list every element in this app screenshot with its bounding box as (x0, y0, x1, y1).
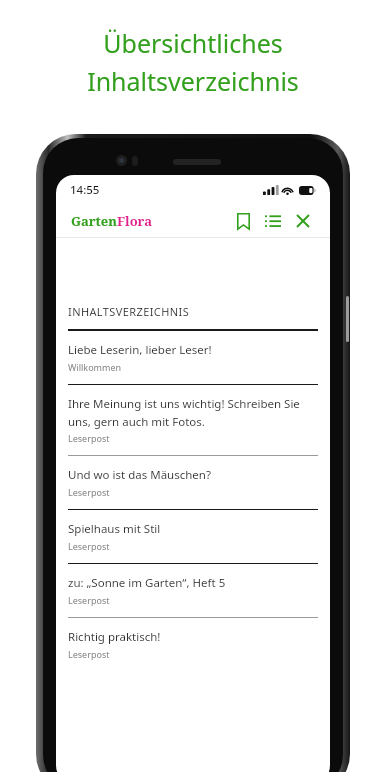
staticText: Ihre Meinung ist uns wichtig! Schreiben … (68, 396, 318, 429)
button[interactable]: Und wo ist das Mäuschen? (68, 456, 318, 509)
button[interactable]: Liebe Leserin, lieber Leser! (68, 331, 318, 384)
button[interactable]: Lesezeichen (228, 206, 258, 236)
staticText: INHALTSVERZEICHNIS (68, 304, 190, 319)
staticText: zu: „Sonne im Garten“, Heft 5 (68, 575, 226, 591)
staticText: Leserpost (68, 486, 110, 498)
button[interactable]: Spielhaus mit Stil (68, 510, 318, 563)
staticText: Leserpost (68, 540, 110, 552)
staticText: Leserpost (68, 648, 110, 660)
staticText: Übersichtliches (103, 26, 283, 60)
staticText: GartenFlora (71, 212, 152, 230)
staticText: 14:55 (70, 182, 100, 198)
staticText: Und wo ist das Mäuschen? (68, 467, 211, 483)
button[interactable]: Ihre Meinung ist uns wichtig! Schreiben … (68, 385, 318, 455)
button[interactable]: zu: „Sonne im Garten“, Heft 5 (68, 564, 318, 617)
button[interactable]: GartenFlora (71, 212, 152, 230)
staticText: Spielhaus mit Stil (68, 521, 161, 537)
button[interactable]: Schließen (288, 206, 318, 236)
button[interactable]: Inhaltsverzeichnis (258, 206, 288, 236)
staticText: Liebe Leserin, lieber Leser! (68, 342, 212, 358)
staticText: Leserpost (68, 432, 110, 444)
staticText: Inhaltsverzeichnis (87, 64, 299, 98)
staticText: Willkommen (68, 361, 122, 373)
staticText: Richtig praktisch! (68, 629, 161, 645)
button[interactable]: Richtig praktisch! (68, 618, 318, 671)
staticText: Leserpost (68, 594, 110, 606)
